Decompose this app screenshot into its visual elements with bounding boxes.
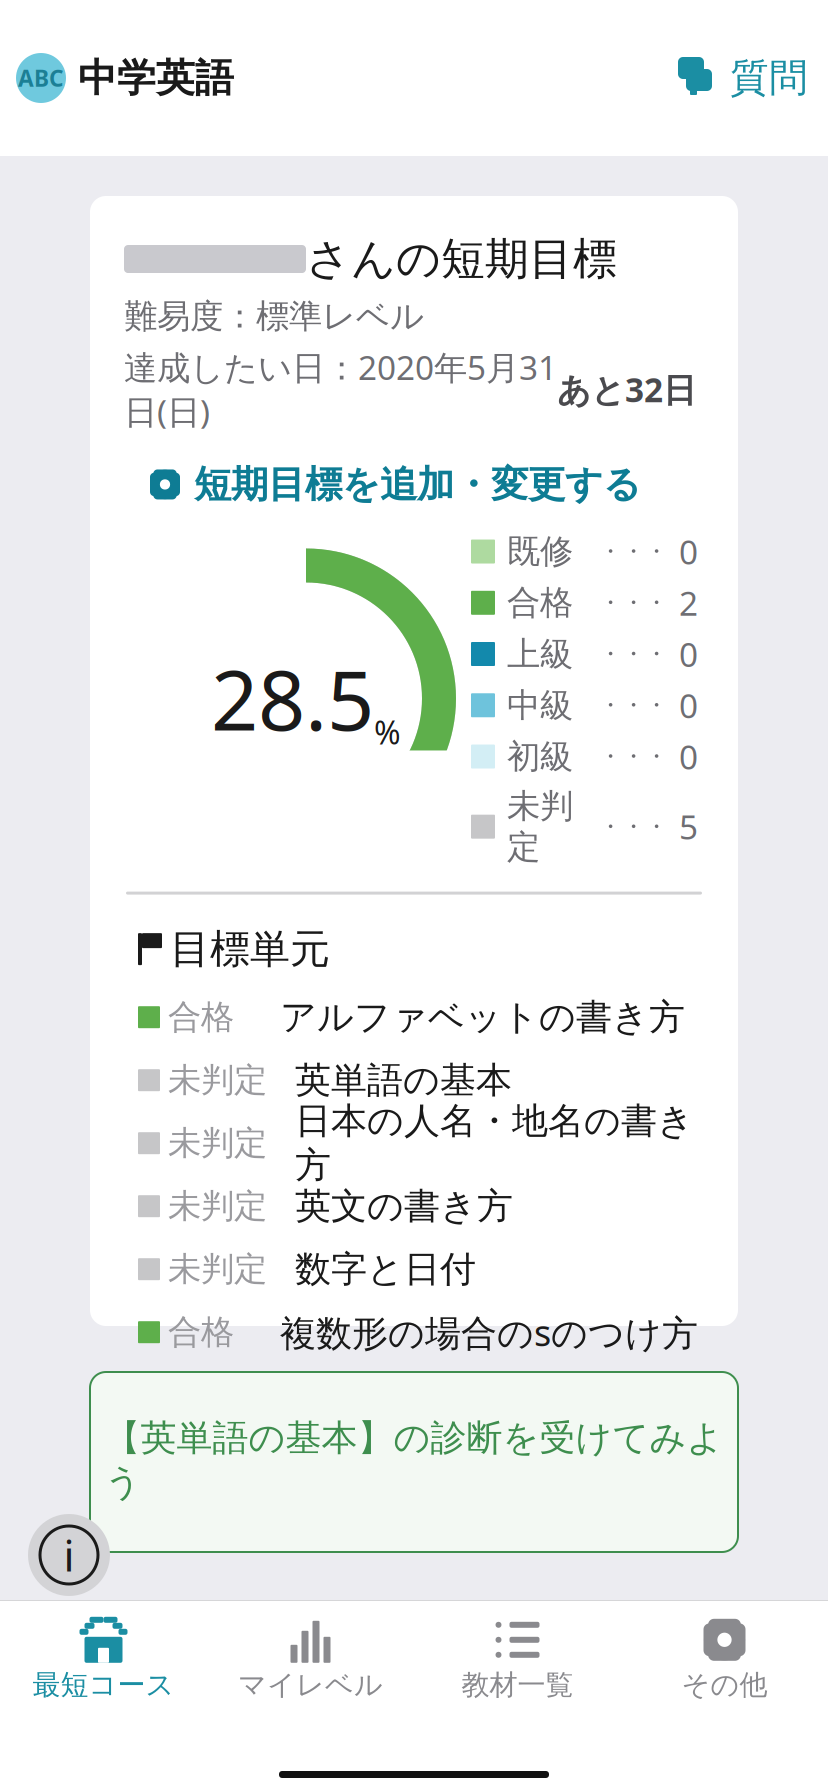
staticText: さんの短期目標 — [306, 232, 617, 286]
staticText: その他 — [681, 1668, 767, 1702]
staticText: 英文の書き方 — [295, 1184, 513, 1228]
staticText: 日本の人名・地名の書き方 — [295, 1099, 694, 1187]
button[interactable]: 情報 — [28, 1514, 110, 1596]
staticText: 中級 — [507, 685, 573, 726]
staticText: 数字と日付 — [295, 1247, 476, 1291]
staticText: 質問 — [730, 54, 808, 102]
staticText: 合格 — [168, 1312, 234, 1353]
button[interactable]: ABC — [0, 53, 234, 103]
staticText: 28.5 — [211, 644, 374, 753]
staticText: ・・・ — [599, 538, 668, 565]
staticText: 既修 — [507, 531, 573, 572]
staticText: ABC — [18, 63, 64, 93]
staticText: ・・・ — [599, 589, 668, 617]
staticText: 目標単元 — [170, 925, 330, 974]
staticText: 教材一覧 — [461, 1668, 573, 1702]
staticText: 初級 — [507, 736, 573, 777]
staticText: 最短コース — [32, 1668, 174, 1702]
staticText: 未判定 — [168, 1123, 267, 1164]
staticText: 0 — [679, 734, 698, 779]
staticText: 上級 — [507, 634, 573, 674]
staticText: 合格 — [168, 997, 234, 1038]
staticText: あと32日 — [557, 367, 696, 411]
button[interactable]: 教材一覧 — [414, 1608, 621, 1708]
staticText: 複数形の場合のsのつけ方 — [280, 1308, 698, 1356]
button[interactable]: 短期目標を追加・変更する — [124, 455, 641, 513]
staticText: 難易度：標準レベル — [124, 296, 424, 337]
staticText: 英単語の基本 — [295, 1058, 512, 1102]
staticText: 未判定 — [168, 1249, 267, 1290]
staticText: i — [63, 1527, 74, 1583]
button[interactable]: 合格 — [138, 986, 704, 1049]
staticText: 0 — [679, 683, 698, 727]
staticText: 2 — [679, 581, 698, 625]
staticText: アルファベットの書き方 — [280, 995, 685, 1039]
staticText: 合格 — [507, 582, 573, 623]
staticText: ・・・ — [599, 743, 668, 770]
staticText: 0 — [679, 632, 698, 676]
staticText: ・・・ — [599, 813, 668, 840]
button[interactable]: 未判定 — [138, 1175, 704, 1238]
button[interactable]: その他 — [621, 1608, 828, 1708]
staticText: 未判定 — [168, 1060, 267, 1101]
button[interactable]: 質問 — [676, 54, 828, 102]
button[interactable]: 未判定 — [138, 1238, 704, 1301]
staticText: % — [374, 711, 401, 753]
staticText: 中学英語 — [78, 54, 234, 102]
staticText: ・・・ — [599, 640, 668, 668]
staticText: 未判定 — [507, 786, 573, 868]
staticText: 未判定 — [168, 1186, 267, 1227]
staticText: 短期目標を追加・変更する — [194, 461, 641, 507]
staticText: 0 — [679, 529, 698, 574]
button[interactable]: 最短コース — [0, 1608, 207, 1708]
button[interactable]: マイレベル — [207, 1608, 414, 1708]
button[interactable]: 未判定 — [138, 1049, 704, 1112]
staticText: ・・・ — [599, 691, 668, 719]
staticText: 【英単語の基本】の診断を受けてみよう — [104, 1416, 723, 1504]
staticText: マイレベル — [238, 1668, 383, 1702]
staticText: 5 — [679, 804, 698, 849]
staticText: 達成したい日：2020年5月31日(日) — [124, 345, 557, 433]
button[interactable]: 合格 — [138, 1301, 704, 1364]
button[interactable]: 未判定 — [138, 1112, 704, 1175]
